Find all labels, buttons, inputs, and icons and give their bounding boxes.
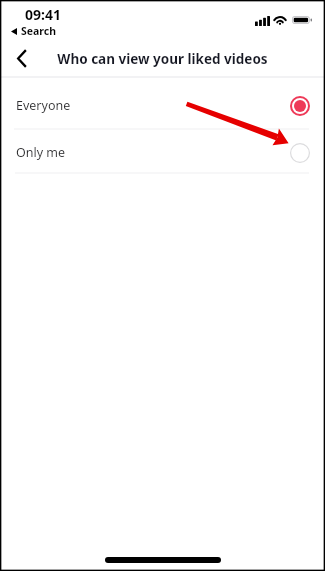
button[interactable]: Everyone (0, 79, 325, 132)
staticText: Only me (16, 144, 66, 161)
staticText: Search (21, 24, 57, 38)
button[interactable]: Only me (0, 131, 325, 174)
button[interactable]: Back (6, 42, 38, 74)
staticText: Who can view your liked videos (0, 50, 325, 68)
staticText: 09:41 (25, 5, 61, 24)
staticText: Everyone (16, 97, 71, 114)
